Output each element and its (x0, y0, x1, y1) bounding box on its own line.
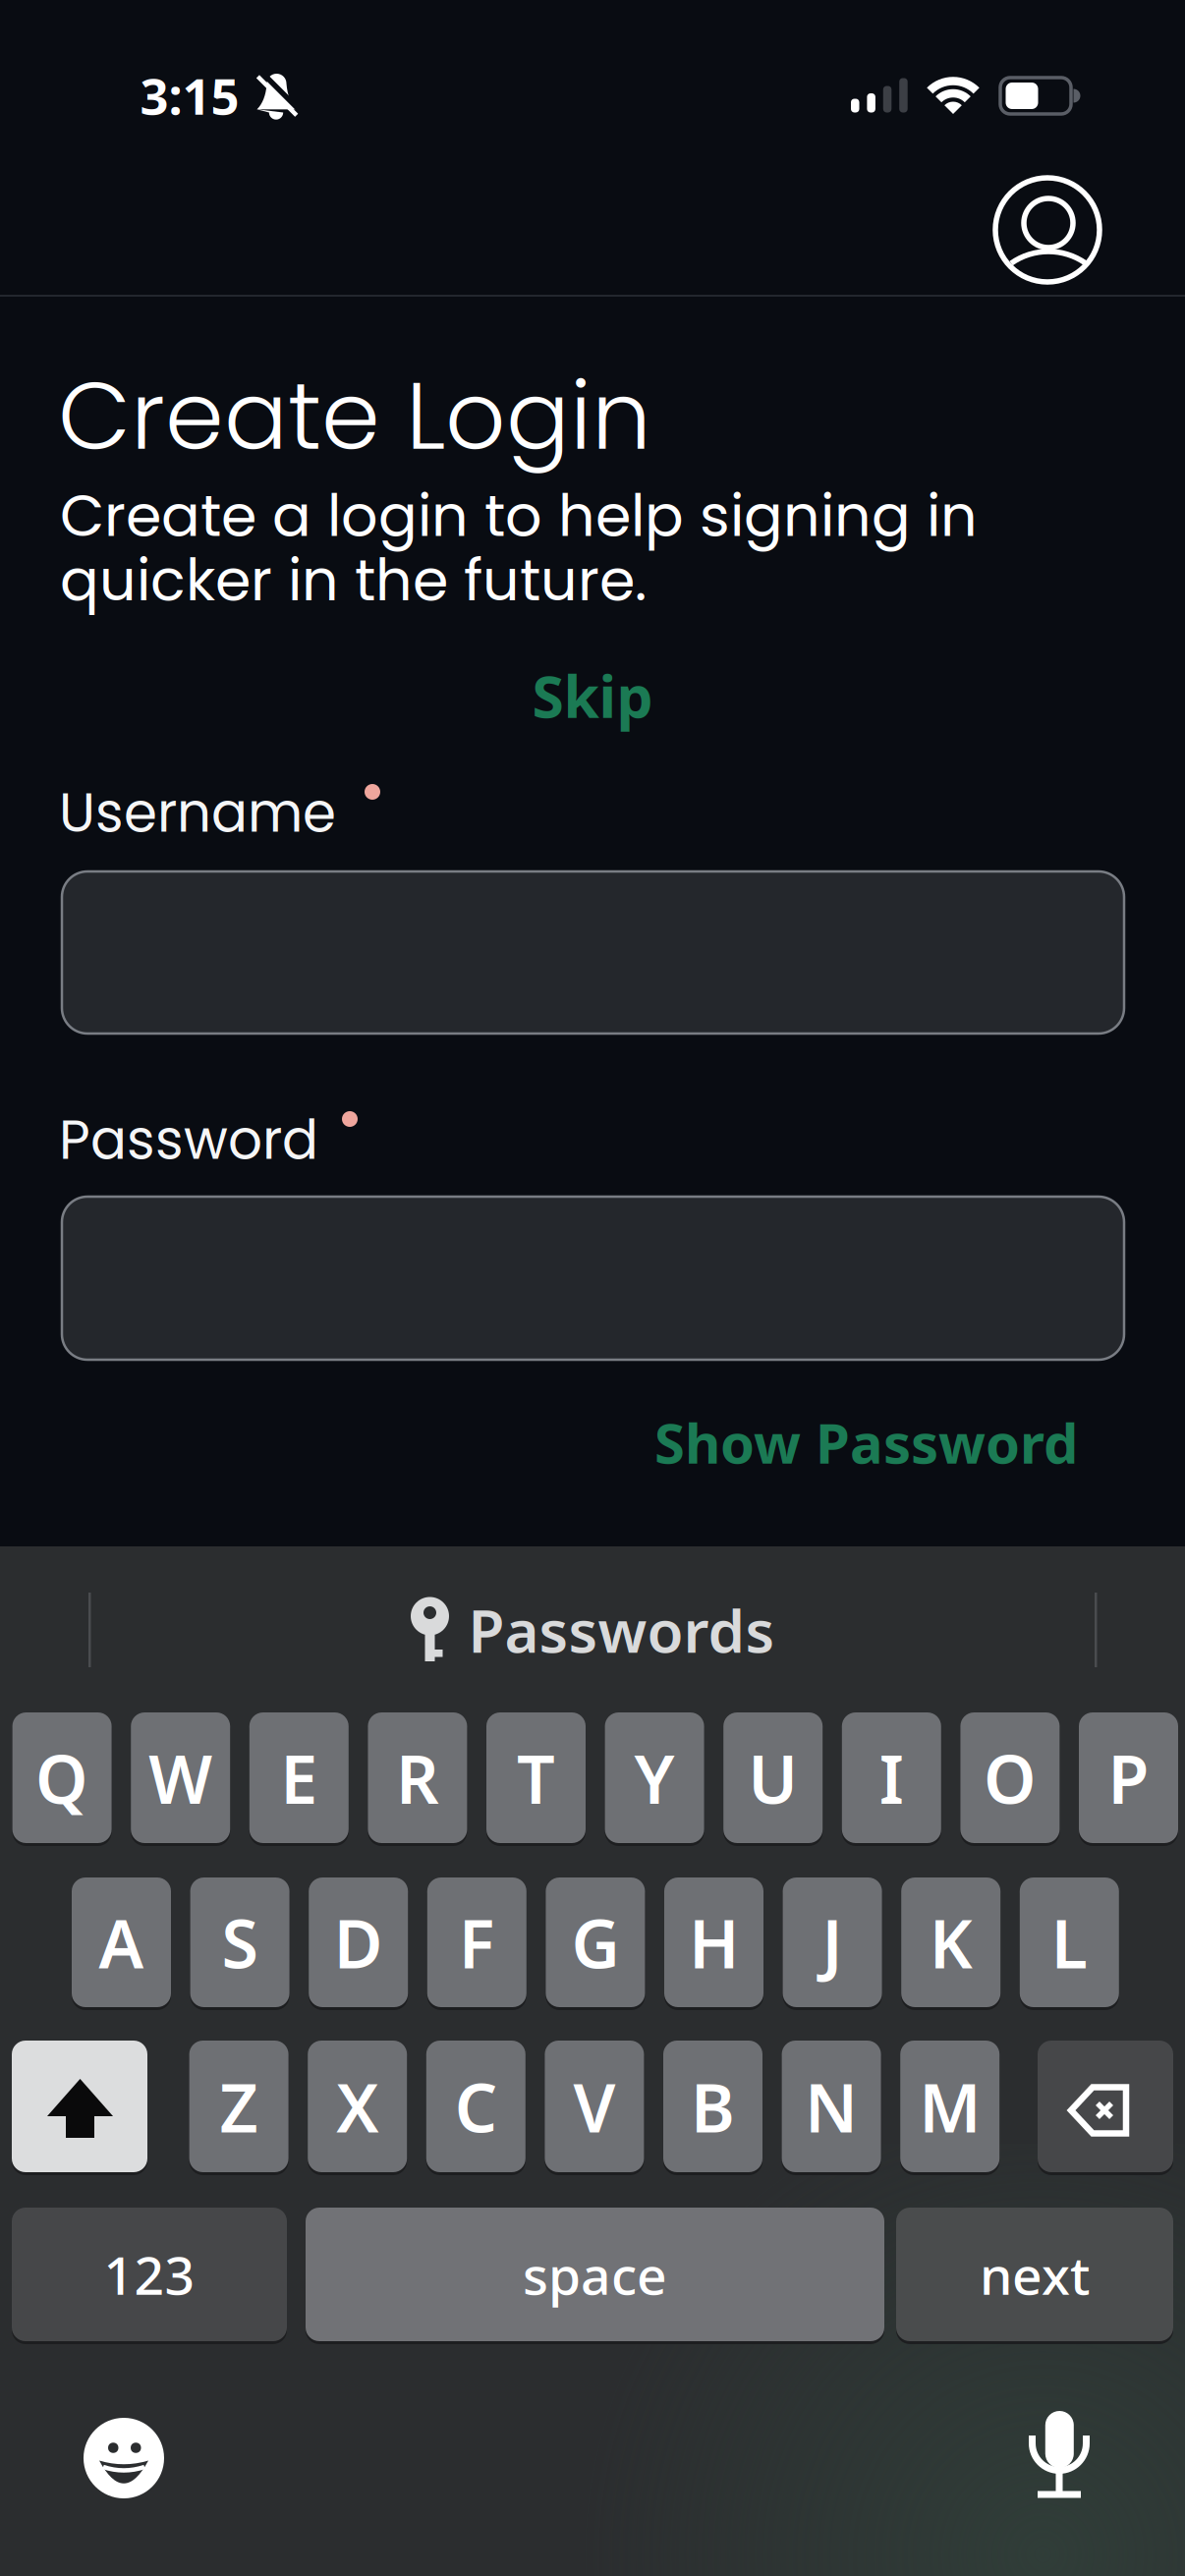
staticText: Skip (532, 656, 653, 735)
button[interactable]: Shift (12, 2041, 147, 2172)
button[interactable]: W (131, 1712, 230, 1843)
staticText: D (334, 1897, 383, 1988)
staticText: J (822, 1897, 843, 1988)
button[interactable]: X (308, 2041, 407, 2172)
staticText: R (396, 1732, 439, 1823)
button[interactable]: C (426, 2041, 525, 2172)
button[interactable]: R (368, 1712, 467, 1843)
staticText: 3:15 (140, 61, 239, 129)
staticText: F (459, 1897, 495, 1988)
staticText: Create Login (58, 350, 651, 482)
button[interactable]: next (896, 2208, 1173, 2341)
staticText: P (1108, 1732, 1149, 1823)
button[interactable]: J (783, 1877, 882, 2007)
staticText: G (571, 1897, 619, 1988)
button[interactable]: L (1020, 1877, 1119, 2007)
button[interactable]: G (546, 1877, 645, 2007)
staticText: E (280, 1732, 318, 1823)
button[interactable]: Show Password (654, 1405, 1078, 1480)
button[interactable]: O (960, 1712, 1060, 1843)
staticText: Z (220, 2061, 258, 2152)
button[interactable]: I (842, 1712, 941, 1843)
staticText: M (919, 2061, 981, 2152)
staticText: S (222, 1897, 258, 1988)
staticText: B (691, 2061, 735, 2152)
staticText: U (748, 1732, 798, 1823)
button[interactable]: Password (62, 1197, 1124, 1360)
staticText: T (517, 1732, 555, 1823)
button[interactable]: N (782, 2041, 881, 2172)
button[interactable]: Y (605, 1712, 704, 1843)
button[interactable]: Emoji (83, 2417, 165, 2499)
button[interactable]: Z (189, 2041, 288, 2172)
button[interactable]: Delete (1038, 2041, 1173, 2172)
button[interactable]: 123 (12, 2208, 287, 2341)
button[interactable]: Username (62, 871, 1124, 1034)
button[interactable]: Skip (532, 656, 653, 735)
button[interactable]: E (249, 1712, 349, 1843)
staticText: W (149, 1732, 212, 1823)
staticText: Y (634, 1732, 675, 1823)
button[interactable]: M (900, 2041, 999, 2172)
button[interactable]: H (664, 1877, 763, 2007)
staticText: Show Password (654, 1405, 1078, 1480)
staticText: K (929, 1897, 972, 1988)
button[interactable]: K (901, 1877, 1000, 2007)
button[interactable]: Profile (990, 173, 1104, 287)
button[interactable]: Passwords (410, 1590, 775, 1670)
staticText: space (523, 2239, 667, 2310)
staticText: O (983, 1732, 1037, 1823)
button[interactable]: D (309, 1877, 408, 2007)
staticText: V (573, 2061, 615, 2152)
staticText: 123 (104, 2239, 195, 2310)
staticText: X (336, 2061, 378, 2152)
staticText: Username (59, 775, 336, 850)
staticText: C (455, 2061, 497, 2152)
staticText: L (1051, 1897, 1088, 1988)
staticText: A (99, 1897, 144, 1988)
staticText: Passwords (468, 1590, 775, 1670)
button[interactable]: F (427, 1877, 526, 2007)
button[interactable]: Q (12, 1712, 112, 1843)
staticText: N (805, 2061, 858, 2152)
staticText: Password (59, 1102, 318, 1177)
button[interactable]: Dictate (1015, 2387, 1103, 2505)
button[interactable]: B (663, 2041, 762, 2172)
button[interactable]: P (1079, 1712, 1178, 1843)
button[interactable]: V (545, 2041, 644, 2172)
staticText: H (689, 1897, 739, 1988)
staticText: next (980, 2239, 1090, 2310)
staticText: I (879, 1732, 904, 1823)
button[interactable]: U (723, 1712, 823, 1843)
button[interactable]: space (306, 2208, 884, 2341)
staticText: Create a login to help signing in quicke… (60, 483, 978, 612)
button[interactable]: A (72, 1877, 171, 2007)
staticText: Q (35, 1732, 89, 1823)
button[interactable]: S (190, 1877, 289, 2007)
button[interactable]: T (486, 1712, 586, 1843)
